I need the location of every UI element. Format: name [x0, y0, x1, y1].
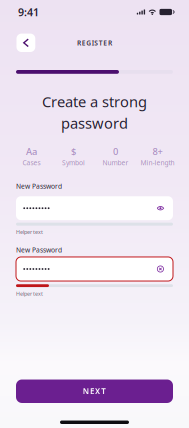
- staticText: password: [61, 113, 128, 133]
- button[interactable]: [16, 196, 173, 220]
- button[interactable]: [16, 257, 173, 281]
- staticText: 0: [113, 145, 118, 157]
- staticText: Number: [102, 158, 128, 167]
- staticText: Cases: [22, 158, 40, 167]
- staticText: Min-length: [140, 158, 174, 167]
- staticText: 9:41: [18, 5, 39, 19]
- staticText: Symbol: [62, 158, 85, 167]
- staticText: REGISTER: [77, 38, 112, 47]
- staticText: Aa: [26, 145, 37, 157]
- staticText: Helper text: [16, 290, 43, 297]
- staticText: Create a strong: [42, 92, 147, 111]
- staticText: $: [71, 145, 76, 157]
- button[interactable]: Back: [16, 34, 35, 52]
- button[interactable]: NEXT: [16, 379, 173, 403]
- staticText: Helper text: [16, 228, 43, 235]
- staticText: New Password: [16, 245, 62, 254]
- staticText: NEXT: [83, 386, 106, 396]
- staticText: New Password: [16, 182, 62, 191]
- staticText: 8+: [152, 145, 162, 157]
